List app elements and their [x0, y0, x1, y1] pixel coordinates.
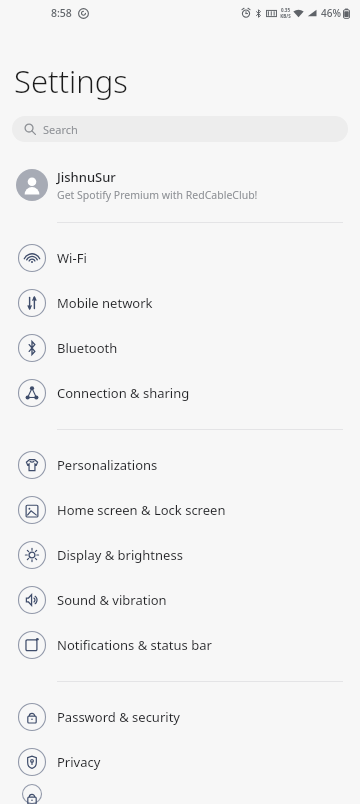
button[interactable]: Notifications & status bar [0, 622, 360, 667]
staticText: Wi-Fi [57, 249, 87, 267]
button[interactable]: Wi-Fi [0, 235, 360, 280]
staticText: Privacy [57, 753, 101, 771]
button[interactable]: Sound & vibration [0, 577, 360, 622]
button[interactable]: JishnuSur [0, 160, 360, 210]
staticText: Get Spotify Premium with RedCableClub! [57, 188, 258, 202]
staticText: 8:58 [51, 6, 72, 20]
staticText: Bluetooth [57, 339, 118, 357]
staticText: KB/S [280, 13, 291, 19]
button[interactable]: Password & security [0, 694, 360, 739]
staticText: Home screen & Lock screen [57, 501, 226, 519]
staticText: Personalizations [57, 456, 158, 474]
button[interactable]: Display & brightness [0, 532, 360, 577]
button[interactable]: Connection & sharing [0, 370, 360, 415]
button[interactable]: Privacy [0, 739, 360, 784]
staticText: JishnuSur [57, 168, 116, 186]
staticText: Search [43, 122, 78, 137]
button[interactable]: Search [12, 116, 348, 142]
staticText: Password & security [57, 708, 180, 726]
button[interactable]: Home screen & Lock screen [0, 487, 360, 532]
button[interactable]: Bluetooth [0, 325, 360, 370]
staticText: Sound & vibration [57, 591, 167, 609]
staticText: Settings [14, 60, 128, 102]
button[interactable]: Personalizations [0, 442, 360, 487]
staticText: Display & brightness [57, 546, 183, 564]
staticText: Mobile network [57, 294, 153, 312]
button[interactable] [0, 784, 360, 804]
staticText: 0.35 [281, 7, 290, 13]
staticText: Notifications & status bar [57, 636, 212, 654]
staticText: 46% [321, 6, 341, 20]
button[interactable]: Mobile network [0, 280, 360, 325]
staticText: Connection & sharing [57, 384, 190, 402]
